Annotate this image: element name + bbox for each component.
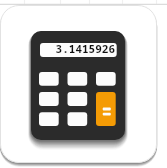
staticText: 3.1415926	[40, 41, 115, 55]
button[interactable]: Calculator	[0, 5, 157, 163]
other: Calculator	[31, 31, 125, 140]
